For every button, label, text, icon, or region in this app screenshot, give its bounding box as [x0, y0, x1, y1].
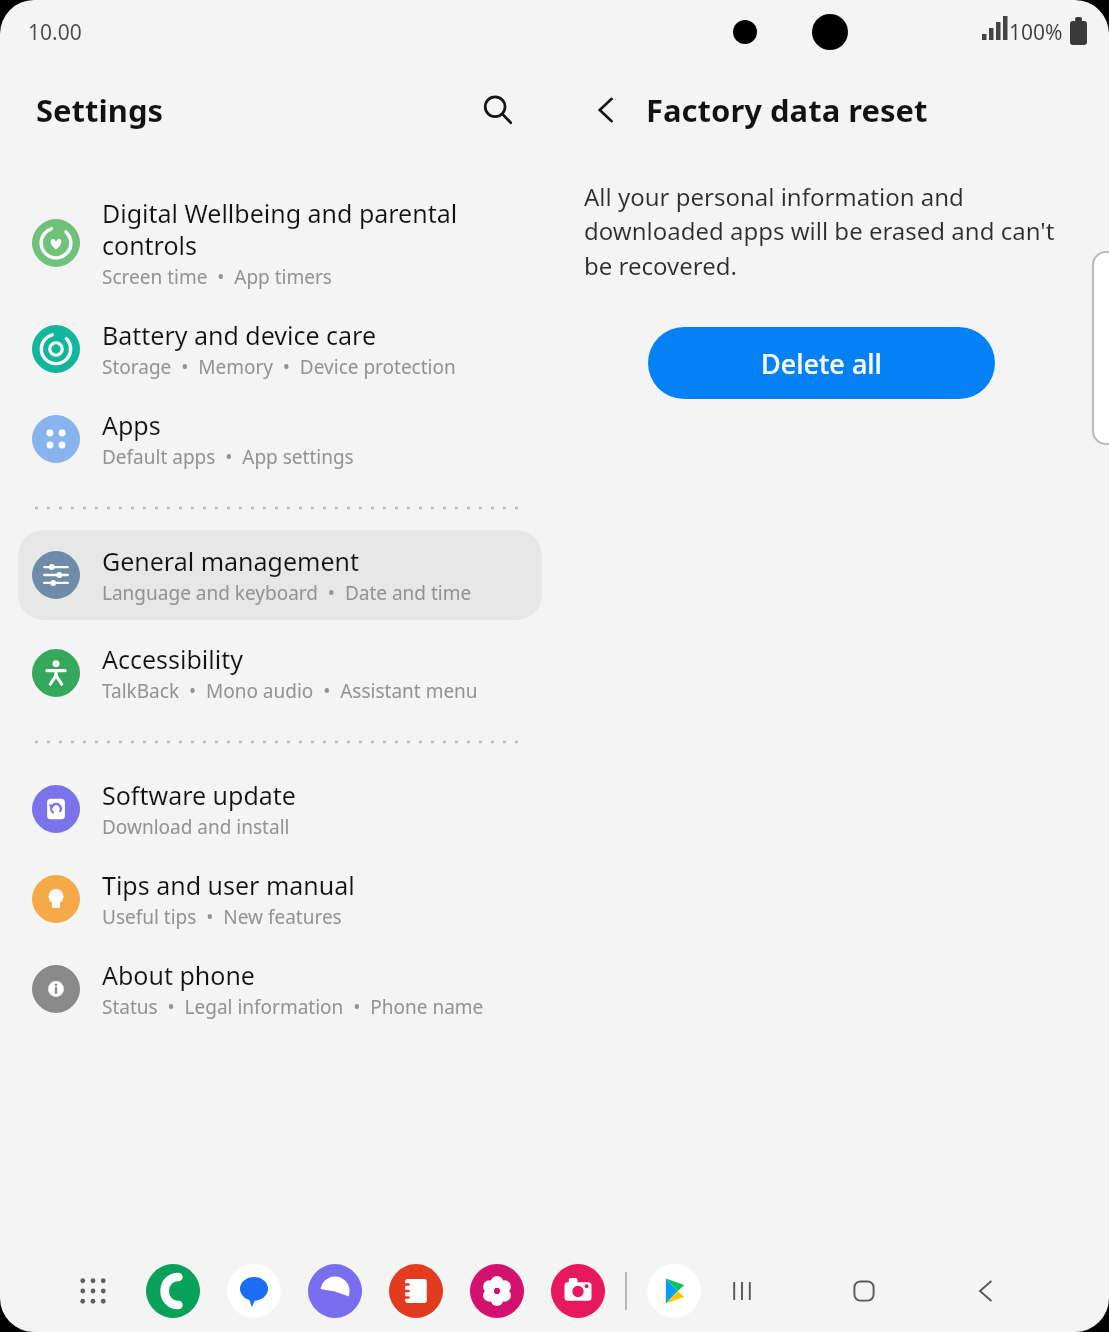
button[interactable]: gallery: [470, 1264, 524, 1318]
button[interactable]: messages: [227, 1264, 281, 1318]
button[interactable]: Battery and device care: [0, 304, 560, 394]
button[interactable]: Apps: [66, 1264, 120, 1318]
staticText: Tips and user manual: [102, 868, 355, 902]
staticText: Software update: [102, 778, 296, 812]
button[interactable]: Accessibility: [0, 628, 560, 718]
button[interactable]: back: [959, 1264, 1013, 1318]
button[interactable]: home: [837, 1264, 891, 1318]
button[interactable]: Search: [472, 84, 524, 136]
staticText: Digital Wellbeing and parental controls: [102, 196, 458, 262]
staticText: Settings: [36, 89, 164, 131]
staticText: 10.00: [28, 18, 82, 47]
staticText: Status • Legal information • Phone name: [102, 994, 484, 1020]
button[interactable]: phone: [146, 1264, 200, 1318]
staticText: TalkBack • Mono audio • Assistant menu: [102, 678, 478, 704]
button[interactable]: camera: [551, 1264, 605, 1318]
staticText: Delete all: [761, 345, 882, 382]
button[interactable]: Tips and user manual: [0, 854, 560, 944]
staticText: Language and keyboard • Date and time: [102, 580, 472, 606]
staticText: All your personal information and downlo…: [584, 180, 1073, 283]
staticText: Screen time • App timers: [102, 264, 332, 290]
button[interactable]: About phone: [0, 944, 560, 1034]
staticText: Storage • Memory • Device protection: [102, 354, 456, 380]
button[interactable]: Digital Wellbeing and parental controls: [0, 182, 560, 304]
button[interactable]: recents: [715, 1264, 769, 1318]
staticText: Default apps • App settings: [102, 444, 354, 470]
button[interactable]: play: [647, 1264, 701, 1318]
staticText: Useful tips • New features: [102, 904, 342, 930]
staticText: About phone: [102, 958, 255, 992]
button[interactable]: Apps: [0, 394, 560, 484]
staticText: Accessibility: [102, 642, 243, 676]
button[interactable]: notes: [389, 1264, 443, 1318]
staticText: Download and install: [102, 814, 290, 840]
button[interactable]: internet: [308, 1264, 362, 1318]
staticText: Apps: [102, 408, 161, 442]
button[interactable]: General management: [18, 530, 542, 620]
staticText: General management: [102, 544, 359, 578]
staticText: Battery and device care: [102, 318, 377, 352]
button[interactable]: Software update: [0, 764, 560, 854]
staticText: 100%: [1009, 18, 1063, 47]
staticText: Factory data reset: [646, 89, 928, 131]
button[interactable]: Delete all: [648, 327, 995, 399]
button[interactable]: Back: [582, 85, 632, 135]
